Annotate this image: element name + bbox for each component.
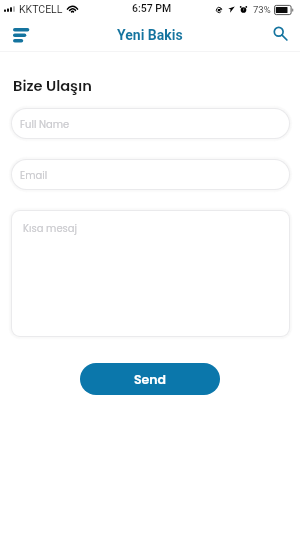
staticText: Yeni Bakis [117, 27, 183, 43]
button[interactable]: Email [11, 159, 290, 190]
staticText: Full Name [20, 117, 70, 131]
staticText: 6:57 PM [132, 2, 172, 14]
staticText: 73% [253, 4, 271, 15]
staticText: Kısa mesaj [23, 221, 78, 235]
button[interactable]: Kısa mesaj [11, 210, 290, 337]
staticText: Email [20, 168, 48, 182]
staticText: KKTCELL [19, 3, 63, 15]
button[interactable]: Full Name [11, 108, 290, 139]
button[interactable]: Search [273, 25, 293, 45]
button[interactable]: Send [80, 363, 220, 395]
button[interactable]: Menu [7, 21, 35, 49]
staticText: Send [134, 371, 167, 388]
staticText: Bize Ulaşın [13, 76, 92, 96]
